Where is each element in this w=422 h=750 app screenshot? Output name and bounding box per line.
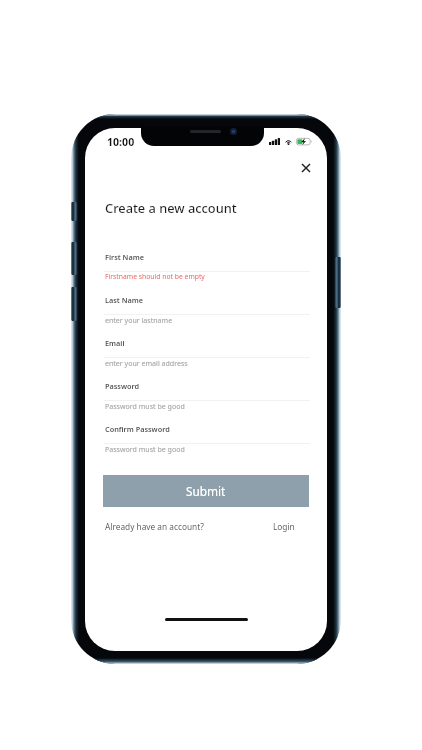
button[interactable]: First Name: [104, 249, 310, 280]
staticText: Password must be good: [105, 401, 185, 411]
button[interactable]: Login: [273, 521, 295, 532]
button[interactable]: Email: [104, 335, 310, 366]
button[interactable]: Password: [104, 378, 310, 409]
staticText: Already have an account?: [105, 521, 204, 532]
staticText: 10:00: [107, 135, 135, 149]
button[interactable]: Submit: [103, 475, 309, 507]
staticText: Email: [105, 338, 125, 348]
staticText: Confirm Password: [105, 424, 170, 434]
button[interactable]: Confirm Password: [104, 421, 310, 452]
staticText: First Name: [105, 252, 144, 262]
staticText: Password: [105, 381, 140, 391]
staticText: Submit: [186, 483, 226, 499]
staticText: Create a new account: [105, 199, 237, 216]
staticText: enter your email address: [105, 358, 188, 368]
staticText: Password must be good: [105, 444, 185, 454]
button[interactable]: Last Name: [104, 292, 310, 323]
staticText: Last Name: [105, 295, 144, 305]
staticText: enter your lastname: [105, 315, 173, 325]
staticText: Login: [273, 521, 295, 532]
button[interactable]: Close: [296, 158, 316, 178]
staticText: Firstname should not be empty: [105, 272, 205, 281]
